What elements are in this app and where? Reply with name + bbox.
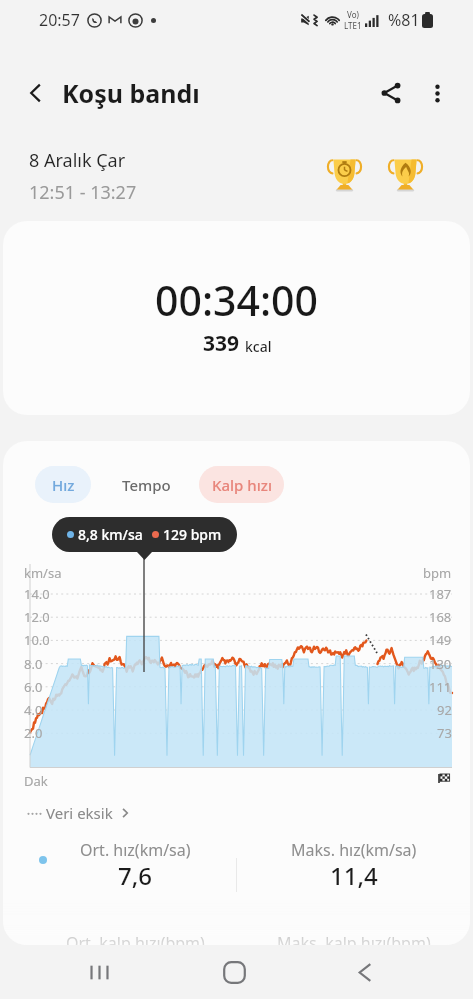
button[interactable]: Veri eksik [27,803,132,823]
staticText: 10.0 [24,631,50,649]
staticText: Hız [52,475,75,495]
staticText: 00:34:00 [155,272,319,328]
staticText: 8,8 km/sa [78,525,143,544]
staticText: 8.0 [24,655,43,673]
button[interactable]: Back [13,70,59,116]
staticText: 12.0 [24,608,50,626]
staticText: 2.0 [24,724,43,742]
staticText: km/sa [24,564,62,582]
staticText: 187 [429,585,452,603]
button[interactable]: 00:34:00 [3,221,470,415]
button[interactable]: Maks. hız(km/sa) [237,839,470,911]
staticText: Ort. hız(km/sa) [80,839,191,861]
staticText: 129 bpm [163,525,222,544]
staticText: 73 [437,724,452,742]
button[interactable]: Ort. hız(km/sa) [3,839,236,911]
button[interactable]: Recents [44,945,173,999]
staticText: 92 [437,701,452,719]
staticText: 111 [429,678,452,696]
staticText: Maks. hız(km/sa) [291,839,417,861]
staticText: Maks. kalp hızı(bpm) [277,932,431,945]
staticText: Dak [24,772,48,790]
staticText: 7,6 [118,859,153,892]
staticText: Tempo [122,475,171,495]
button[interactable]: Back [301,945,429,999]
staticText: 12:51 - 13:27 [29,180,137,205]
button[interactable]: Hız [35,466,91,503]
staticText: bpm [423,564,452,582]
staticText: 20:57 [39,9,80,31]
button[interactable]: Ort. kalp hızı(bpm) [3,932,236,945]
staticText: 4.0 [24,701,43,719]
staticText: Veri eksik [46,803,113,823]
button[interactable]: Kalp hızı [199,466,284,503]
staticText: 339 [203,329,240,358]
staticText: Kalp hızı [212,475,272,495]
staticText: 8 Aralık Çar [29,148,126,173]
staticText: LTE1 [344,20,362,31]
staticText: Koşu bandı [62,76,200,110]
staticText: Vo) [347,9,359,20]
button[interactable]: Tempo [103,466,189,503]
button[interactable]: Share [368,70,414,116]
staticText: 168 [429,608,452,626]
staticText: 14.0 [24,585,50,603]
button[interactable]: Maks. kalp hızı(bpm) [237,932,470,945]
staticText: 11,4 [330,859,378,892]
staticText: 6.0 [24,678,43,696]
button[interactable]: More options [414,70,460,116]
staticText: 130 [429,655,452,673]
button[interactable]: Home [173,945,301,999]
staticText: 149 [429,631,452,649]
staticText: kcal [245,337,272,356]
staticText: Ort. kalp hızı(bpm) [66,932,205,945]
staticText: %81 [388,9,420,31]
